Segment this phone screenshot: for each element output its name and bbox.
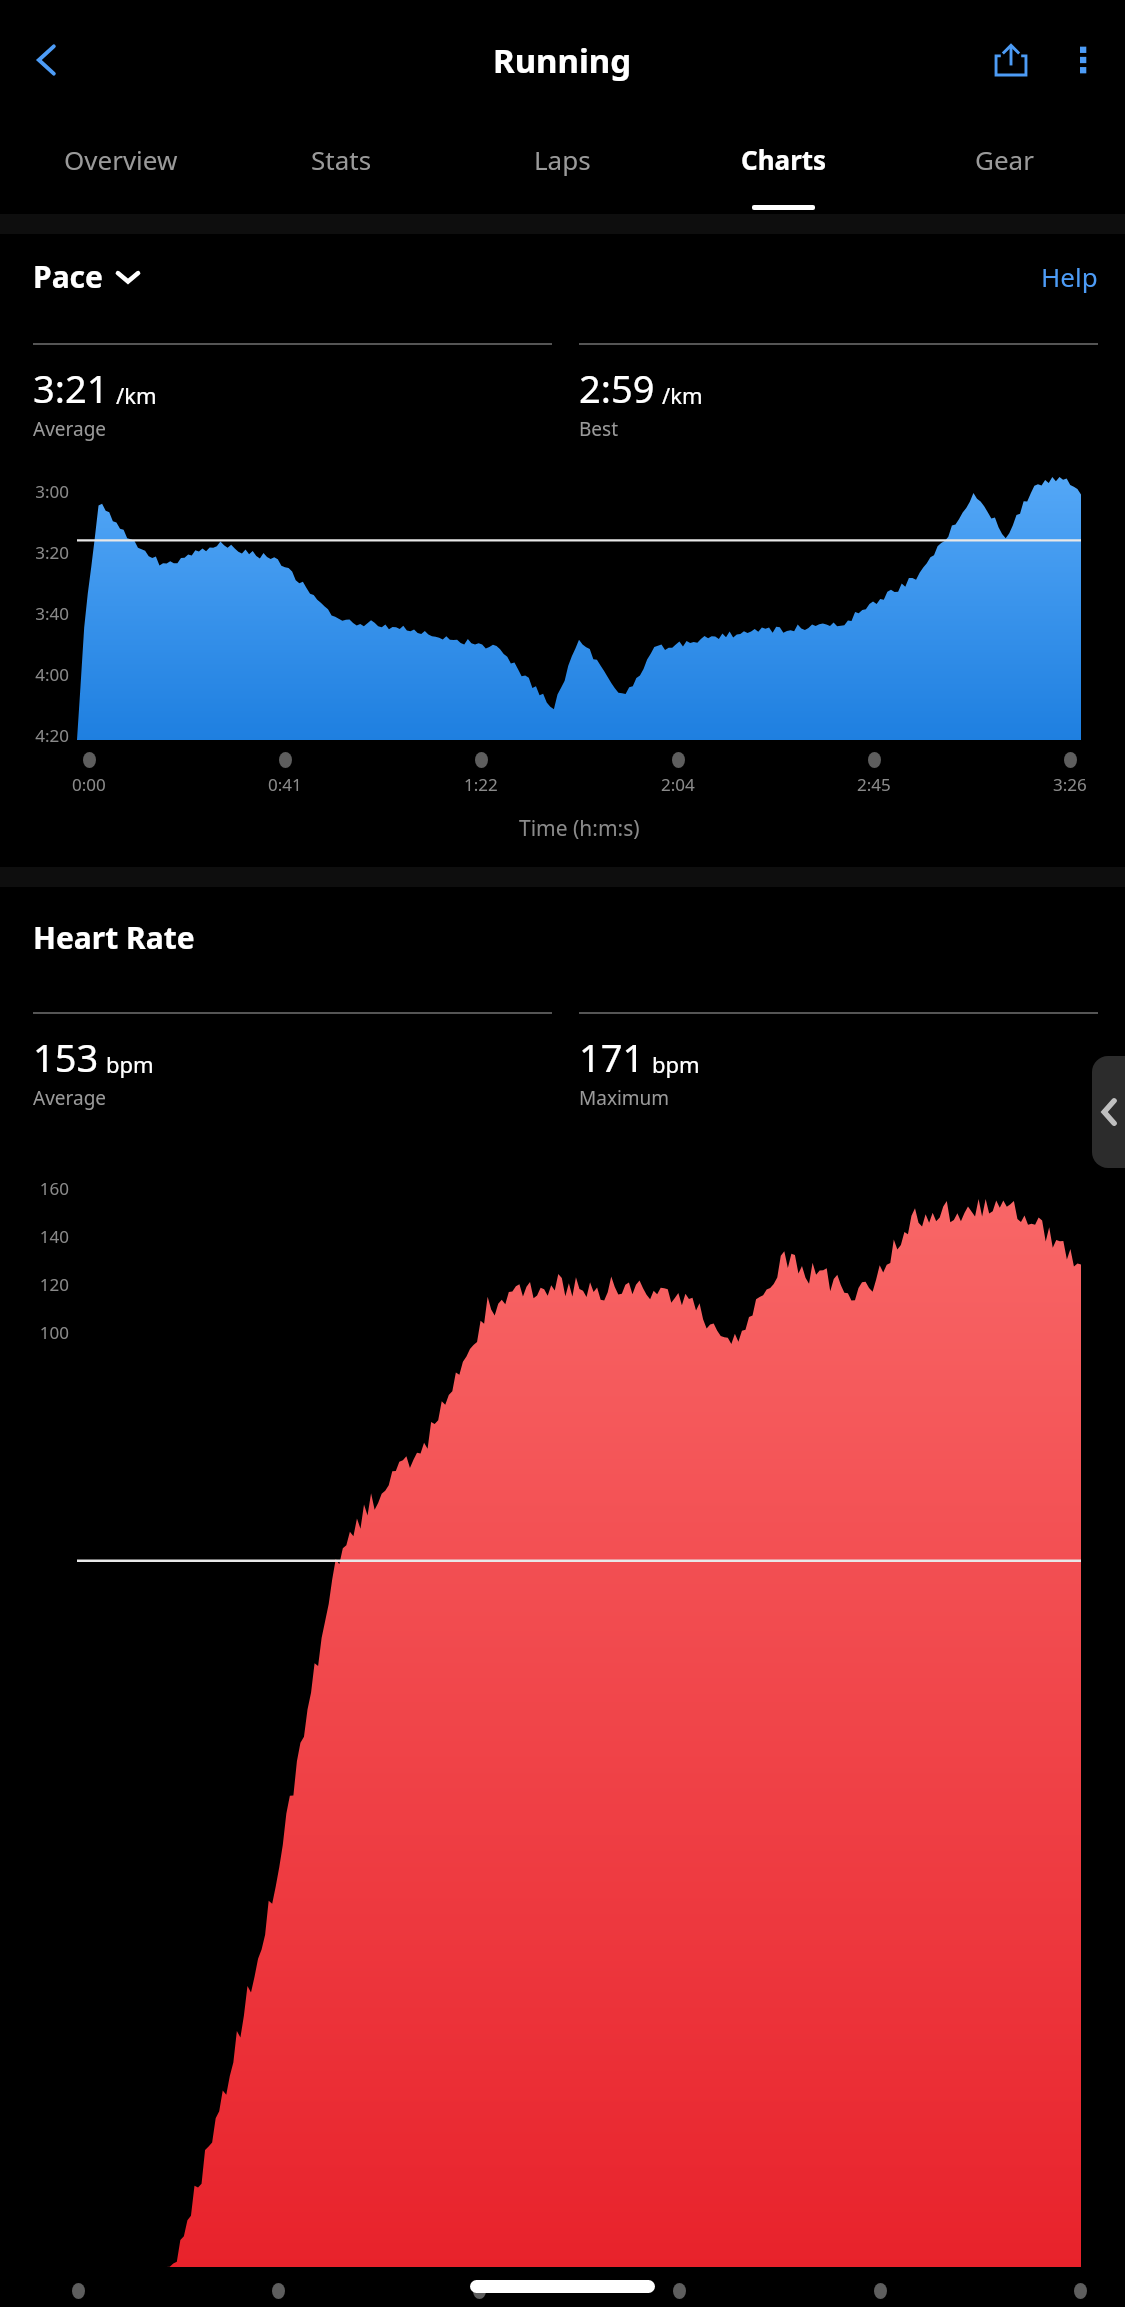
staticText: 3:26: [1053, 773, 1087, 796]
button[interactable]: Stats: [231, 120, 452, 214]
button[interactable]: Gear: [894, 120, 1115, 214]
button[interactable]: Laps: [452, 120, 673, 214]
staticText: /km: [662, 380, 703, 410]
button[interactable]: Pace: [33, 256, 139, 297]
staticText: 153: [33, 1031, 99, 1083]
staticText: 2:04: [661, 773, 695, 796]
staticText: Pace: [33, 256, 103, 297]
staticText: 1:22: [464, 773, 498, 796]
button[interactable]: Back: [14, 27, 80, 93]
button[interactable]: Overview: [10, 120, 231, 214]
staticText: Stats: [311, 142, 372, 177]
staticText: 3:00: [0, 480, 69, 503]
button[interactable]: Share: [975, 24, 1047, 96]
staticText: 3:21: [33, 362, 109, 414]
staticText: Heart Rate: [33, 917, 195, 958]
staticText: Charts: [741, 142, 827, 177]
staticText: Maximum: [579, 1085, 670, 1111]
staticText: Average: [33, 1085, 107, 1111]
staticText: Time (h:m:s): [519, 814, 640, 843]
staticText: 0:00: [72, 773, 106, 796]
staticText: 2:45: [857, 773, 891, 796]
button[interactable]: Help: [1041, 259, 1098, 294]
staticText: 160: [0, 1177, 69, 1200]
staticText: 4:00: [0, 663, 69, 686]
button[interactable]: Open panel: [1092, 1056, 1125, 1168]
staticText: 0:41: [268, 773, 302, 796]
staticText: Best: [579, 416, 619, 442]
staticText: Average: [33, 416, 107, 442]
button[interactable]: More options: [1047, 24, 1119, 96]
staticText: Laps: [534, 142, 591, 177]
staticText: 120: [0, 1273, 69, 1296]
button[interactable]: Charts: [673, 120, 894, 214]
staticText: bpm: [652, 1049, 700, 1079]
staticText: 4:20: [0, 724, 69, 747]
staticText: Help: [1041, 259, 1098, 294]
staticText: 3:40: [0, 602, 69, 625]
staticText: Running: [493, 38, 632, 83]
staticText: /km: [116, 380, 157, 410]
staticText: 100: [0, 1321, 69, 1344]
staticText: 2:59: [579, 362, 655, 414]
staticText: Gear: [975, 142, 1034, 177]
staticText: Overview: [64, 142, 178, 177]
staticText: 140: [0, 1225, 69, 1248]
staticText: 171: [579, 1031, 645, 1083]
staticText: 3:20: [0, 541, 69, 564]
staticText: bpm: [106, 1049, 154, 1079]
